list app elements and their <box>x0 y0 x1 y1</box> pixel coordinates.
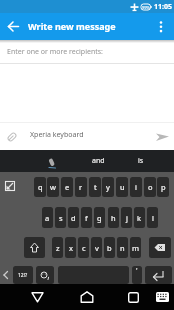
button[interactable]: i <box>130 177 142 197</box>
staticText: w <box>50 182 56 192</box>
button[interactable]: z <box>52 237 63 258</box>
staticText: c <box>82 243 86 253</box>
button[interactable]: and <box>80 150 116 172</box>
staticText: x <box>69 243 73 253</box>
button[interactable]: r <box>75 177 87 197</box>
button[interactable]: k <box>134 207 145 228</box>
staticText: d <box>71 213 76 223</box>
button[interactable]: v <box>91 237 102 258</box>
staticText: b <box>107 243 112 253</box>
staticText: l <box>152 213 154 223</box>
button[interactable] <box>0 123 24 150</box>
button[interactable]: l <box>147 207 158 228</box>
staticText: Xperia keyboard <box>30 130 84 140</box>
staticText: i <box>135 182 137 192</box>
button[interactable]: h <box>108 207 119 228</box>
button[interactable] <box>150 284 174 310</box>
button[interactable] <box>149 237 171 258</box>
button[interactable] <box>25 284 49 310</box>
button[interactable]: y <box>102 177 114 197</box>
staticText: 12!? <box>18 272 28 279</box>
staticText: p <box>161 182 166 192</box>
button[interactable] <box>0 172 22 200</box>
staticText: 11:05 <box>154 2 172 12</box>
button[interactable]: t <box>89 177 101 197</box>
button[interactable] <box>36 266 54 284</box>
staticText: g <box>97 213 102 223</box>
button[interactable] <box>0 13 26 40</box>
staticText: o <box>148 182 153 192</box>
staticText: a <box>45 213 50 223</box>
button[interactable]: u <box>116 177 128 197</box>
button[interactable]: e <box>61 177 73 197</box>
button[interactable]: j <box>121 207 132 228</box>
button[interactable]: is <box>128 150 154 172</box>
staticText: k <box>137 213 142 223</box>
staticText: ' <box>136 266 138 276</box>
button[interactable]: Xperia keyboard <box>0 123 174 150</box>
staticText: u <box>120 182 125 192</box>
staticText: q <box>38 182 43 192</box>
staticText: m <box>132 243 140 253</box>
button[interactable]: g <box>94 207 105 228</box>
button[interactable]: b <box>104 237 115 258</box>
button[interactable] <box>132 266 142 284</box>
button[interactable] <box>147 13 174 40</box>
staticText: r <box>79 182 83 192</box>
button[interactable]: 12!? <box>13 266 33 284</box>
staticText: Enter one or more recipients: <box>7 47 103 57</box>
button[interactable]: m <box>130 237 141 258</box>
staticText: v <box>95 243 99 253</box>
button[interactable]: o <box>144 177 156 197</box>
button[interactable]: n <box>117 237 128 258</box>
button[interactable]: p <box>157 177 169 197</box>
button[interactable]: c <box>78 237 89 258</box>
staticText: j <box>126 213 128 223</box>
button[interactable]: f <box>81 207 92 228</box>
button[interactable]: a <box>42 207 53 228</box>
staticText: s <box>59 213 63 223</box>
staticText: e <box>65 182 70 192</box>
staticText: 99% <box>142 5 150 10</box>
staticText: f <box>85 213 88 223</box>
button[interactable] <box>145 266 172 284</box>
staticText: y <box>106 182 110 192</box>
button[interactable]: d <box>68 207 79 228</box>
button[interactable]: s <box>55 207 66 228</box>
button[interactable] <box>75 284 99 310</box>
button[interactable] <box>150 123 174 150</box>
button[interactable]: q <box>34 177 46 197</box>
button[interactable] <box>121 284 145 310</box>
staticText: n <box>120 243 125 253</box>
staticText: z <box>56 243 60 253</box>
staticText: t <box>94 182 97 192</box>
button[interactable]: w <box>47 177 59 197</box>
staticText: and <box>92 156 105 166</box>
staticText: is <box>138 156 144 166</box>
button[interactable] <box>24 237 45 258</box>
staticText: Write new message <box>28 20 116 32</box>
staticText: h <box>111 213 116 223</box>
button[interactable]: x <box>65 237 76 258</box>
button[interactable]: Enter one or more recipients: <box>0 40 174 63</box>
